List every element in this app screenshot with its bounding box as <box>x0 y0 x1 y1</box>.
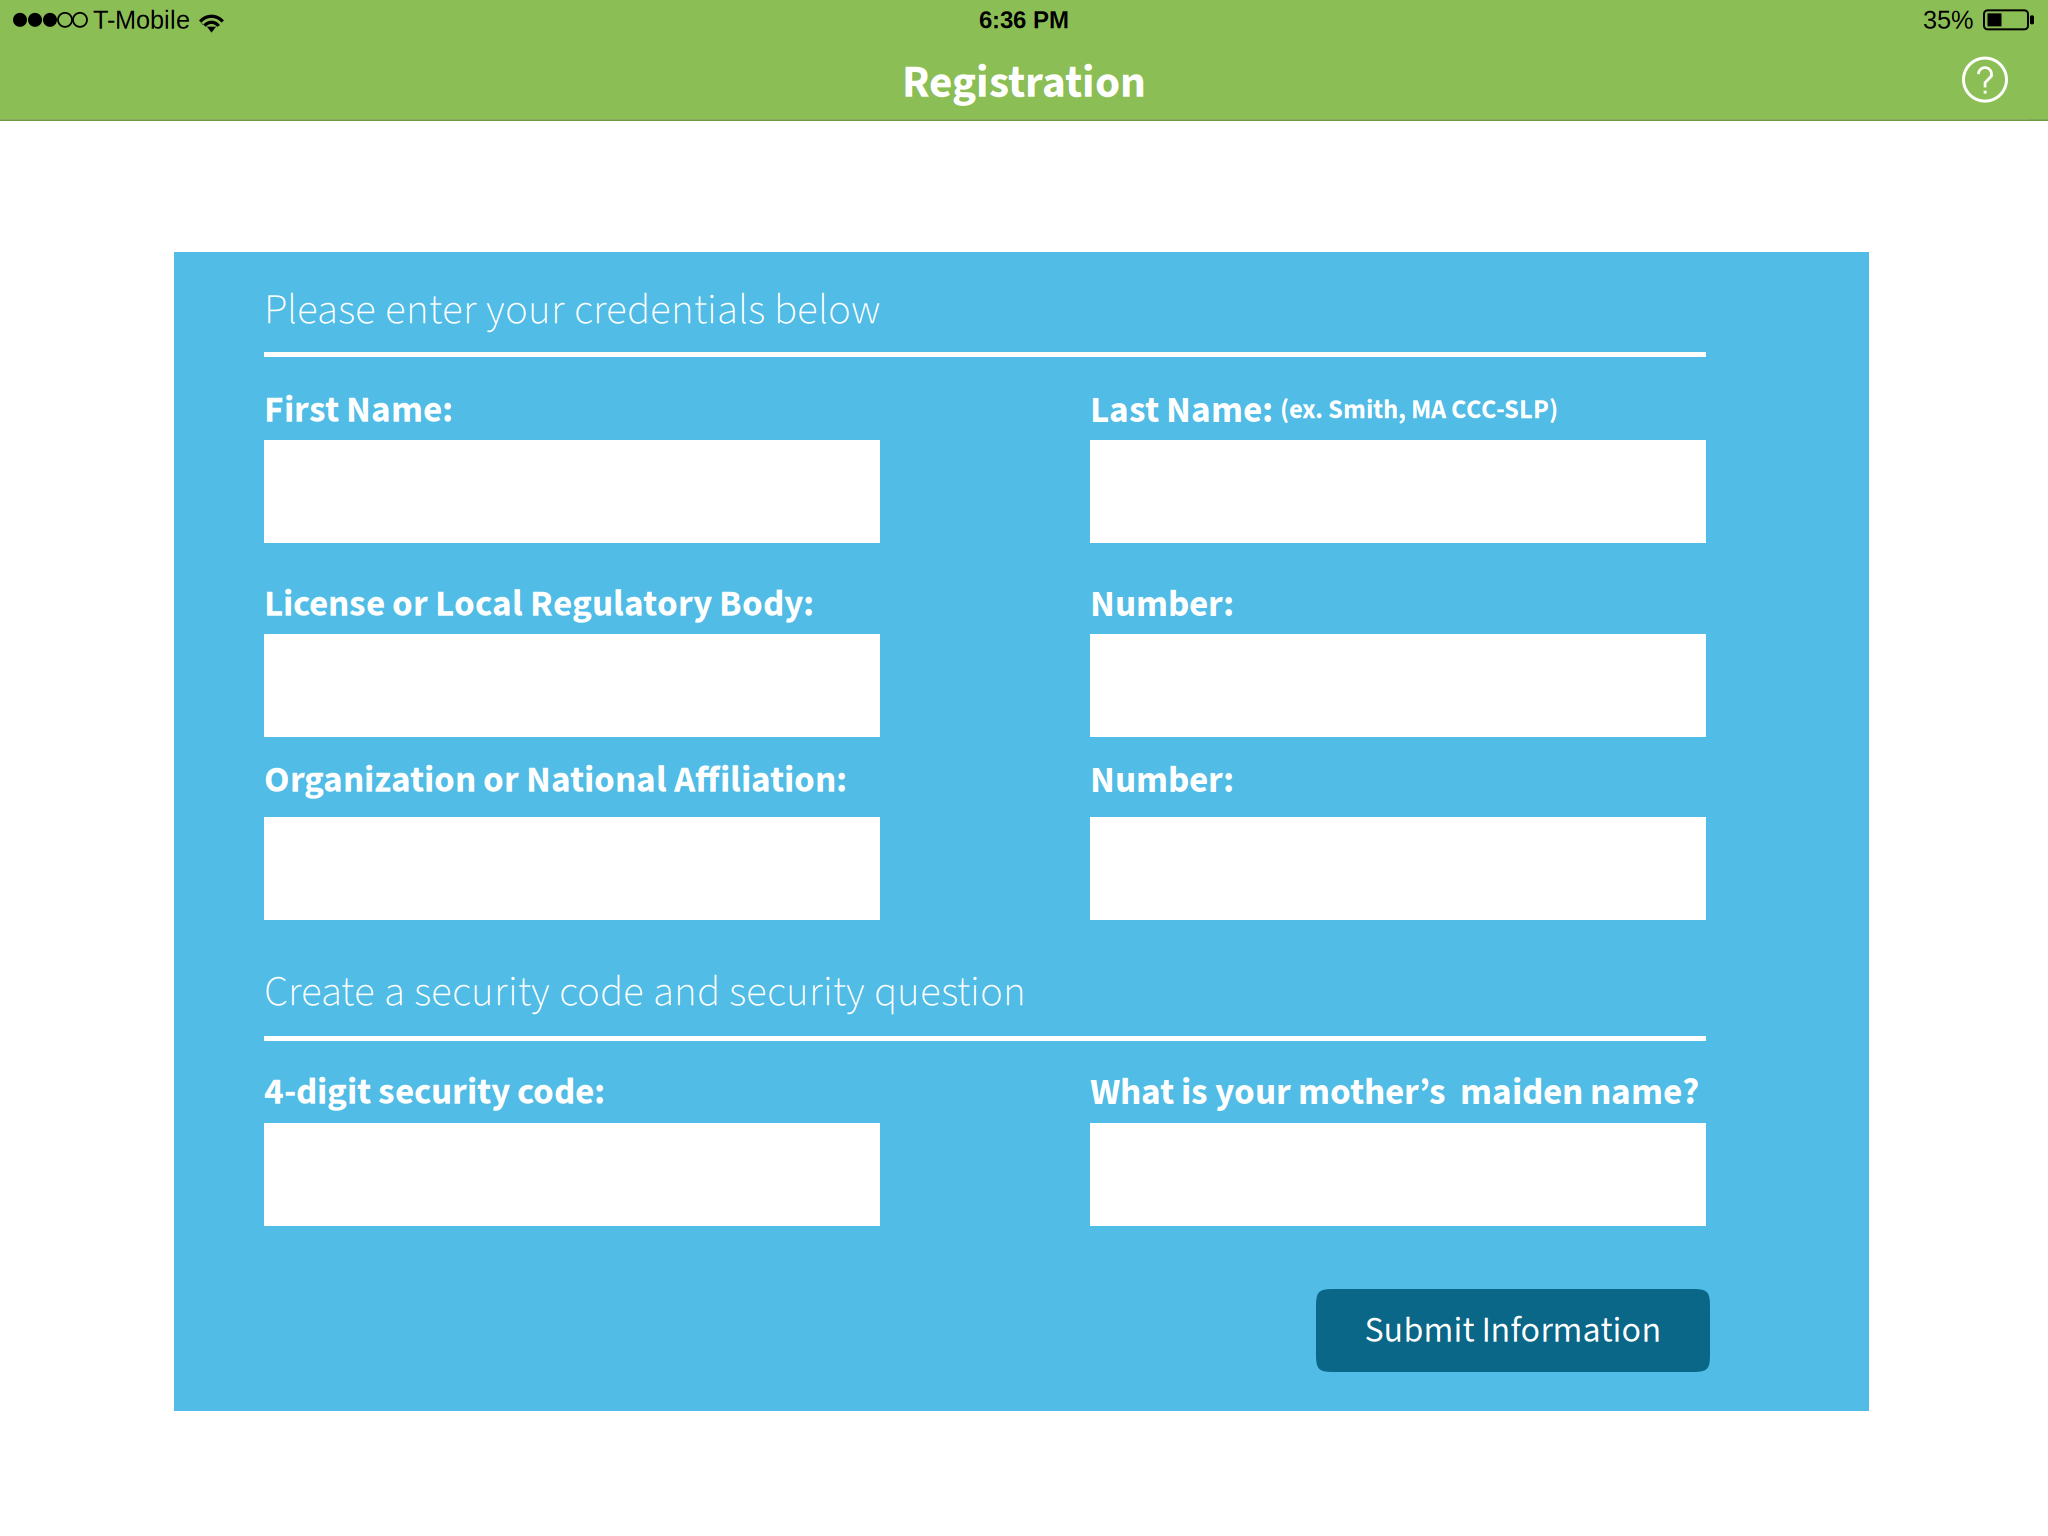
staticText: License or Local Regulatory Body: <box>264 577 814 631</box>
staticText: First Name: <box>264 383 453 437</box>
staticText: Organization or National Affiliation: <box>264 753 847 807</box>
staticText: T-Mobile <box>93 6 190 34</box>
staticText: Number: <box>1090 578 1234 631</box>
staticText: Please enter your credentials below <box>264 280 880 340</box>
staticText: Registration <box>902 50 1146 115</box>
staticText: Last Name: <box>1090 384 1273 437</box>
staticText: (ex. Smith, MA CCC-SLP) <box>1280 391 1558 429</box>
button[interactable]: Help <box>1943 40 2027 119</box>
staticText: Create a security code and security ques… <box>264 962 1026 1022</box>
staticText: 4-digit security code: <box>264 1065 605 1119</box>
staticText: 35% <box>1923 6 1974 34</box>
staticText: Submit Information <box>1364 1305 1661 1356</box>
staticText: What is your mother’s maiden name? <box>1090 1066 1699 1119</box>
staticText: 6:36 PM <box>979 6 1069 33</box>
staticText: Number: <box>1090 754 1234 807</box>
button[interactable]: Submit Information <box>1316 1289 1710 1372</box>
